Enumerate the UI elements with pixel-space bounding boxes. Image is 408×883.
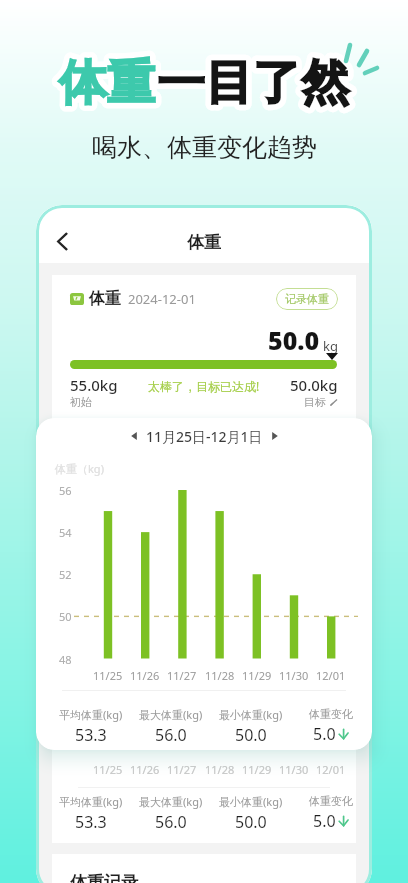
staticText: 56.0: [155, 724, 187, 746]
staticText: 52: [59, 567, 72, 582]
staticText: 54: [59, 525, 72, 540]
staticText: 体重: [187, 232, 221, 253]
staticText: 50.0kg: [290, 375, 338, 395]
button[interactable]: Previous week: [124, 426, 144, 446]
staticText: 11/28: [205, 762, 235, 777]
button[interactable]: 记录体重: [276, 288, 338, 310]
staticText: 11/29: [242, 762, 272, 777]
staticText: 太棒了，目标已达成!: [148, 378, 260, 394]
staticText: 体重: [59, 53, 155, 113]
staticText: 平均体重(kg): [59, 794, 123, 809]
staticText: 48: [59, 652, 72, 667]
staticText: 目标: [304, 395, 326, 409]
staticText: 5.0: [313, 723, 336, 745]
staticText: 11/26: [130, 762, 160, 777]
staticText: 最大体重(kg): [139, 794, 203, 809]
staticText: 53.3: [75, 724, 107, 746]
staticText: 56: [59, 483, 72, 498]
staticText: 53.3: [75, 811, 107, 833]
staticText: kg: [323, 337, 338, 355]
staticText: 最小体重(kg): [219, 707, 283, 722]
staticText: 11/29: [242, 668, 272, 683]
staticText: 12/01: [316, 762, 346, 777]
staticText: 50: [59, 609, 72, 624]
staticText: 初始: [70, 395, 92, 409]
staticText: 最大体重(kg): [139, 707, 203, 722]
staticText: 11/27: [167, 668, 197, 683]
staticText: 11/25: [93, 668, 123, 683]
staticText: 体重记录: [70, 872, 138, 883]
staticText: 12/01: [316, 668, 346, 683]
staticText: 5.0: [313, 810, 336, 832]
staticText: 50.0: [235, 724, 267, 746]
staticText: 50.0: [235, 811, 267, 833]
staticText: 喝水、体重变化趋势: [92, 132, 317, 163]
staticText: 记录体重: [285, 292, 329, 306]
staticText: 2024-12-01: [128, 290, 196, 308]
staticText: 体重: [89, 289, 121, 309]
staticText: 56.0: [155, 811, 187, 833]
staticText: 体重变化: [309, 794, 353, 808]
staticText: 55.0kg: [70, 375, 118, 395]
staticText: 50.0: [268, 323, 320, 357]
button[interactable]: Next week: [265, 426, 285, 446]
staticText: 11/26: [130, 668, 160, 683]
staticText: 最小体重(kg): [219, 794, 283, 809]
staticText: 平均体重(kg): [59, 707, 123, 722]
staticText: 11/25: [93, 762, 123, 777]
staticText: 11/30: [279, 668, 309, 683]
staticText: 11/27: [167, 762, 197, 777]
staticText: 一目了然: [157, 53, 349, 113]
staticText: 11月25日-12月1日: [146, 427, 263, 446]
button[interactable]: Back: [44, 223, 80, 259]
staticText: 体重变化: [309, 707, 353, 721]
staticText: 体重: [59, 53, 155, 113]
staticText: 11/28: [205, 668, 235, 683]
staticText: 一目了然: [157, 53, 349, 113]
staticText: 11/30: [279, 762, 309, 777]
staticText: 体重（kg): [55, 461, 104, 476]
